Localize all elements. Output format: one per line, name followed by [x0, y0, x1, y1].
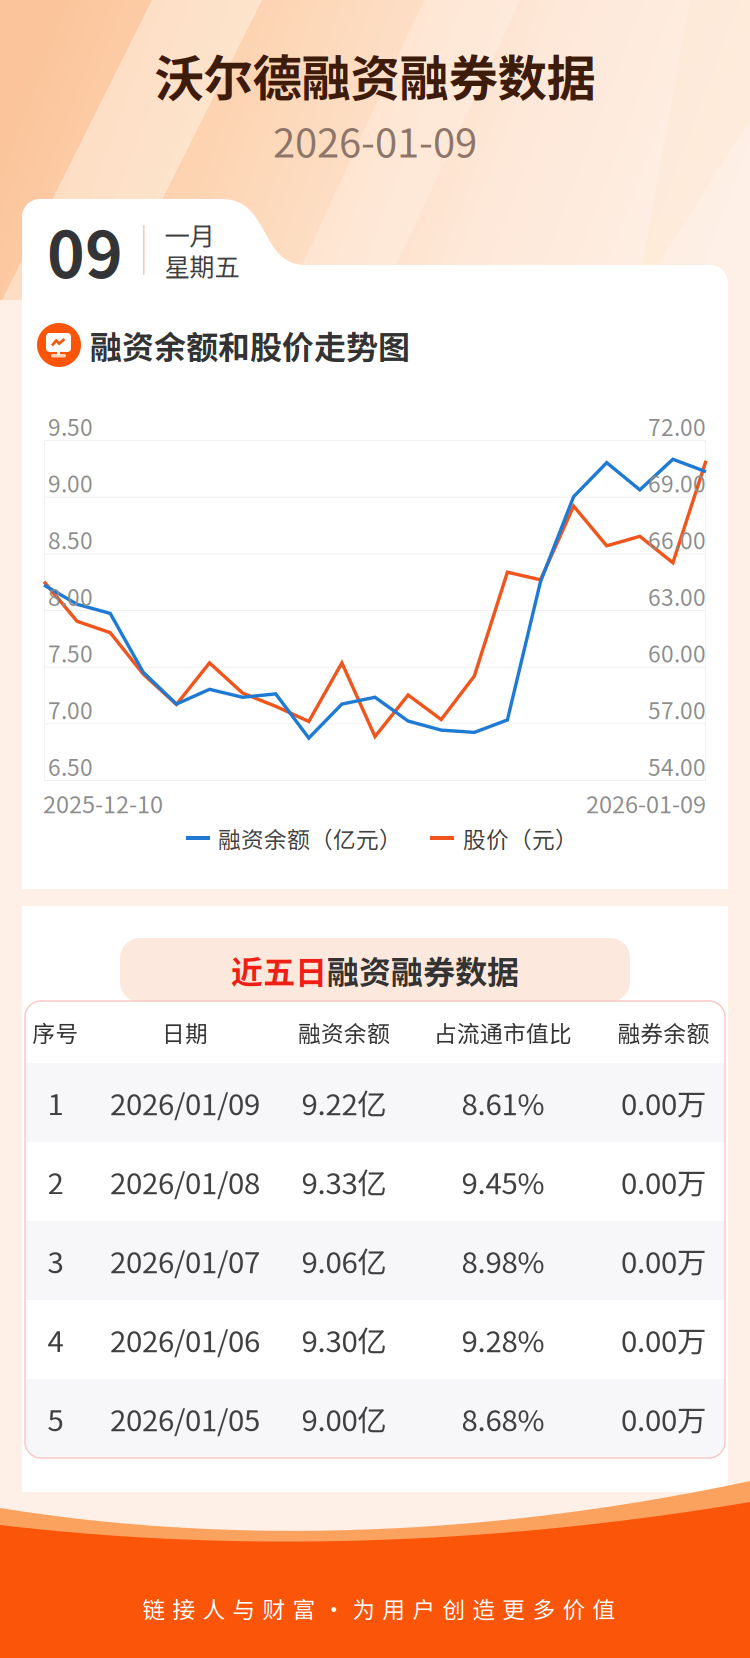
staticText: 链接人与财富·为用户创造更多价值 [142, 1592, 615, 1624]
staticText: 融资融券数据 [327, 947, 519, 993]
staticText: 近五日 [231, 947, 327, 993]
staticText: 2026/01/08 [110, 1160, 260, 1203]
staticText: 0.00万 [621, 1160, 706, 1203]
staticText: 66.00 [648, 523, 706, 556]
staticText: 63.00 [648, 580, 706, 612]
staticText: 0.00万 [621, 1318, 706, 1361]
staticText: 融资余额和股价走势图 [90, 322, 410, 368]
staticText: 5 [47, 1397, 63, 1440]
staticText: 股价（元） [463, 822, 578, 854]
staticText: 融资余额 [298, 1016, 390, 1048]
staticText: 7.00 [48, 693, 93, 726]
staticText: 日期 [162, 1016, 208, 1048]
staticText: 2026/01/09 [110, 1081, 260, 1124]
staticText: 序号 [32, 1016, 78, 1048]
staticText: 8.68% [461, 1397, 544, 1440]
staticText: 6.50 [48, 750, 93, 782]
staticText: 9.22亿 [301, 1081, 386, 1124]
staticText: 0.00万 [621, 1397, 706, 1440]
staticText: 9.00亿 [301, 1397, 386, 1440]
staticText: 72.00 [648, 410, 706, 442]
staticText: 沃尔德融资融券数据 [154, 39, 595, 111]
staticText: 1 [47, 1081, 63, 1124]
staticText: 一月 [165, 216, 215, 253]
staticText: 9.45% [461, 1160, 544, 1203]
staticText: 9.28% [461, 1318, 544, 1361]
staticText: 融资余额（亿元） [218, 822, 402, 854]
staticText: 占流通市值比 [434, 1016, 572, 1048]
staticText: 9.33亿 [301, 1160, 386, 1203]
staticText: 9.50 [48, 410, 93, 442]
staticText: 2 [47, 1160, 63, 1203]
staticText: 0.00万 [621, 1081, 706, 1124]
staticText: 9.06亿 [301, 1239, 386, 1282]
staticText: 2026/01/05 [110, 1397, 260, 1440]
staticText: 2026/01/06 [110, 1318, 260, 1361]
staticText: 2025-12-10 [43, 786, 163, 820]
staticText: 4 [47, 1318, 63, 1361]
staticText: 09 [47, 204, 123, 296]
staticText: 2026-01-09 [586, 786, 706, 820]
staticText: 8.50 [48, 523, 93, 556]
staticText: 2026/01/07 [110, 1239, 260, 1282]
staticText: 54.00 [648, 750, 706, 782]
staticText: 57.00 [648, 693, 706, 726]
staticText: 9.00 [48, 466, 93, 499]
staticText: 8.98% [461, 1239, 544, 1282]
staticText: 60.00 [648, 636, 706, 669]
staticText: 9.30亿 [301, 1318, 386, 1361]
staticText: 7.50 [48, 636, 93, 669]
staticText: 8.61% [461, 1081, 544, 1124]
staticText: 69.00 [648, 466, 706, 499]
staticText: 星期五 [165, 247, 240, 284]
staticText: 8.00 [48, 580, 93, 612]
staticText: 3 [47, 1239, 63, 1282]
staticText: 0.00万 [621, 1239, 706, 1282]
staticText: 融券余额 [617, 1016, 709, 1048]
staticText: 2026-01-09 [273, 111, 477, 169]
